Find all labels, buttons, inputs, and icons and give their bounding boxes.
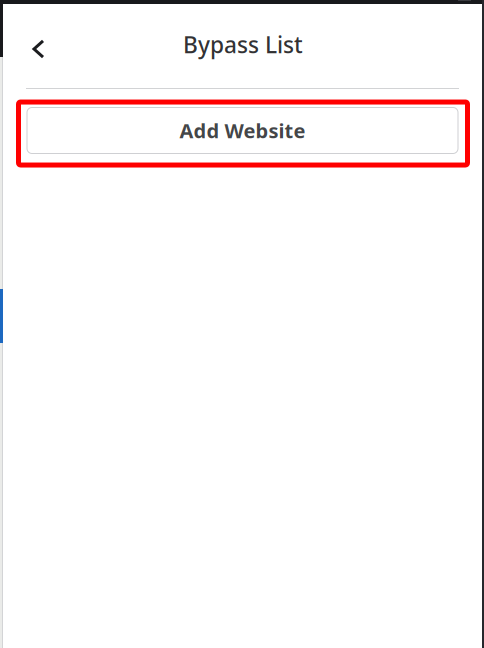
button[interactable]: Add Website (27, 107, 458, 153)
staticText: Bypass List (183, 29, 303, 59)
button[interactable]: Back (18, 29, 58, 69)
staticText: Add Website (179, 117, 305, 144)
